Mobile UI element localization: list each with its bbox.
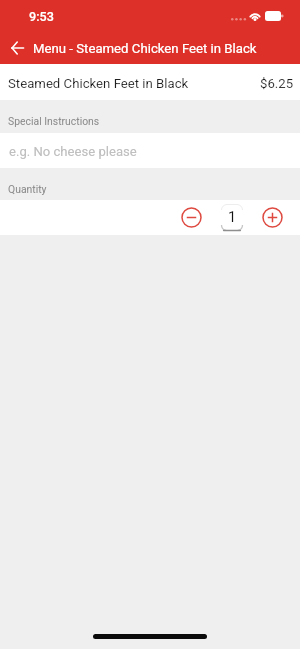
staticText: e.g. No cheese please	[9, 144, 137, 159]
button[interactable]: 1	[221, 204, 243, 231]
staticText: 9:53	[29, 9, 54, 24]
button[interactable]: Steamed Chicken Feet in Black	[0, 64, 300, 100]
button[interactable]: e.g. No cheese please	[0, 133, 300, 168]
button[interactable]: Increase quantity	[262, 207, 283, 228]
staticText: 1	[228, 209, 237, 226]
staticText: $6.25	[260, 76, 294, 91]
staticText: Menu - Steamed Chicken Feet in Black	[33, 41, 257, 56]
button[interactable]: Back	[0, 30, 33, 64]
staticText: Special Instructions	[8, 115, 100, 127]
staticText: Quantity	[8, 183, 47, 195]
staticText: Steamed Chicken Feet in Black	[8, 76, 189, 91]
button[interactable]: Decrease quantity	[181, 207, 202, 228]
